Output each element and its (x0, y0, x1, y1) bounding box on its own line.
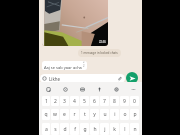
button[interactable]: y (90, 109, 99, 120)
staticText: f (74, 126, 76, 133)
staticText: 7 (103, 98, 106, 105)
staticText: 22:36 (99, 40, 106, 44)
button[interactable]: Send (126, 72, 138, 84)
button[interactable]: Voice input (91, 82, 108, 96)
button[interactable]: Emoji (40, 74, 125, 83)
staticText: d (63, 126, 67, 133)
staticText: 5 (83, 98, 86, 105)
staticText: 3 (63, 98, 66, 105)
staticText: 6 (93, 98, 96, 105)
button[interactable]: h (90, 123, 99, 135)
staticText: o (123, 111, 127, 118)
button[interactable]: r (70, 109, 79, 120)
button[interactable]: More (125, 82, 142, 96)
staticText: r (73, 111, 76, 118)
staticText: l (124, 126, 126, 133)
button[interactable]: w (51, 109, 59, 120)
staticText: i (114, 111, 116, 118)
button[interactable]: Clipboard (39, 82, 57, 96)
button[interactable]: a (42, 123, 50, 135)
button[interactable]: 0 (130, 96, 139, 106)
button[interactable]: 4 (70, 96, 79, 106)
button[interactable]: 1 (42, 96, 50, 106)
staticText: j (104, 126, 106, 133)
button[interactable]: k (110, 123, 119, 135)
button[interactable]: s (51, 123, 59, 135)
button[interactable]: j (100, 123, 109, 135)
staticText: w (53, 111, 57, 118)
button[interactable]: 8 (110, 96, 119, 106)
button[interactable]: l (120, 123, 129, 135)
button[interactable]: 3 (60, 96, 69, 106)
button[interactable]: 7 (100, 96, 109, 106)
button[interactable]: u (100, 109, 109, 120)
button[interactable]: f (70, 123, 79, 135)
button[interactable]: Photo message (42, 0, 108, 46)
staticText: 2 (54, 98, 57, 105)
staticText: 8 (113, 98, 116, 105)
button[interactable]: o (120, 109, 129, 120)
staticText: Likhe (49, 76, 60, 82)
button[interactable]: 1 message in locked chats (78, 49, 121, 57)
staticText: p (133, 111, 137, 118)
staticText: q (44, 111, 48, 118)
staticText: g (83, 126, 87, 133)
staticText: 4 (73, 98, 76, 105)
staticText: h (93, 126, 97, 133)
staticText: u (103, 111, 107, 118)
button[interactable]: GIF (74, 82, 91, 96)
other: Emoji (42, 76, 47, 81)
button[interactable]: 6 (90, 96, 99, 106)
button[interactable]: 9 (120, 96, 129, 106)
staticText: t (84, 111, 86, 118)
staticText: 1 (45, 98, 48, 105)
button[interactable]: g (80, 123, 89, 135)
button[interactable]: p (130, 109, 139, 120)
staticText: a (45, 126, 48, 133)
staticText: 0 (133, 98, 136, 105)
button[interactable]: e (60, 109, 69, 120)
staticText: k (113, 126, 116, 133)
button[interactable]: 5 (80, 96, 89, 106)
button[interactable]: Stickers (57, 82, 74, 96)
button[interactable]: 2 (51, 96, 59, 106)
button[interactable]: i (110, 109, 119, 120)
button[interactable]: d (60, 123, 69, 135)
staticText: s (54, 126, 57, 133)
button[interactable]: Attach file (117, 76, 122, 81)
staticText: 9 (123, 98, 126, 105)
staticText: e (63, 111, 66, 118)
button[interactable]: n (130, 123, 139, 135)
button[interactable]: q (42, 109, 50, 120)
button[interactable]: Aaj se sab yaar acha (42, 61, 87, 70)
button[interactable]: t (80, 109, 89, 120)
staticText: Aaj se sab yaar acha (44, 65, 82, 70)
staticText: 22:38 (83, 61, 85, 69)
staticText: 1 message in locked chats (81, 51, 118, 55)
staticText: n (133, 126, 137, 133)
staticText: y (93, 111, 96, 118)
button[interactable]: Settings (108, 82, 125, 96)
